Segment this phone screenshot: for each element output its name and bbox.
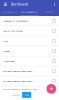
button[interactable]: CANCEL — [11, 92, 21, 98]
button[interactable]: More options — [51, 0, 57, 8]
button[interactable]: Language of the dashboard — [0, 16, 59, 26]
staticText: CANCEL — [12, 93, 19, 96]
staticText: CONFIGURATION — [21, 10, 38, 13]
button[interactable]: INFORMATION — [0, 8, 20, 16]
button[interactable]: Type of the insights — [0, 26, 59, 36]
button[interactable]: Config — [0, 46, 59, 56]
staticText: Kid user’s flexible Team Level 1 — [3, 79, 34, 83]
button[interactable]: Kid user’s flexible Team Level 1 — [0, 76, 59, 86]
button[interactable]: Add — [46, 84, 56, 94]
button[interactable]: USB — [0, 36, 59, 46]
staticText: SAVE — [25, 93, 29, 96]
staticText: INFORMATION — [2, 10, 18, 13]
staticText: Kid user’s flexible Team Level 1 — [3, 69, 34, 73]
button[interactable]: Kid user’s flexible Team Level 1 — [0, 66, 59, 76]
button[interactable]: Menu — [2, 0, 9, 8]
staticText: Config — [3, 49, 9, 53]
button[interactable]: SAVE — [22, 92, 31, 98]
staticText: Language of the dashboard — [3, 19, 28, 22]
staticText: The provided SIP interface is here — [3, 87, 37, 91]
button[interactable]: HISTORY — [39, 8, 59, 16]
button[interactable]: CONFIGURATION — [20, 8, 39, 16]
staticText: Type of the insights — [3, 29, 23, 33]
staticText: Add things — [3, 59, 14, 63]
button[interactable]: Add things — [0, 56, 59, 66]
staticText: Dashboard — [11, 2, 28, 6]
staticText: HISTORY — [45, 10, 53, 13]
staticText: USB — [3, 39, 8, 43]
